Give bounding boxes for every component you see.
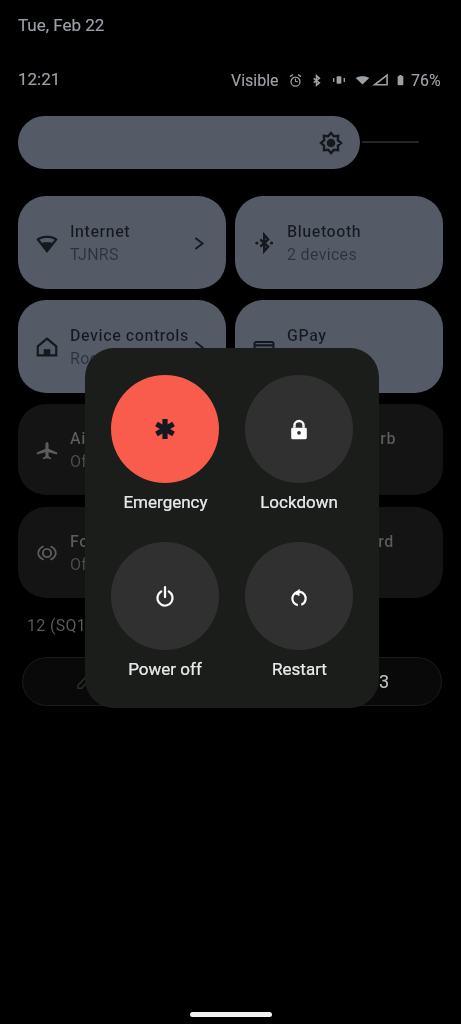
button[interactable]: Airplane mode <box>18 404 226 495</box>
staticText: Tue, Feb 22 <box>18 15 105 35</box>
button[interactable]: GPay <box>235 300 443 393</box>
button[interactable]: Brightness <box>18 116 360 169</box>
staticText: Emergency <box>123 492 208 512</box>
button[interactable]: Internet <box>18 196 226 289</box>
staticText: Room <box>70 349 114 368</box>
staticText: Lockdown <box>260 492 338 512</box>
staticText: TJNRS <box>70 245 119 264</box>
button[interactable]: Restart <box>242 542 356 679</box>
staticText: Bluetooth <box>287 222 362 241</box>
staticText: Device controls <box>70 326 189 345</box>
staticText: Do not disturb <box>287 429 396 448</box>
staticText: Focus mode <box>70 532 164 551</box>
staticText: Screen record <box>287 532 394 551</box>
button[interactable]: Device controls <box>18 300 226 393</box>
staticText: Off <box>70 555 94 574</box>
button[interactable]: Lockdown <box>242 375 356 512</box>
button[interactable]: Emergency <box>108 375 222 512</box>
button[interactable]: Focus mode <box>18 507 226 598</box>
button[interactable]: 3 <box>22 657 442 706</box>
staticText: Internet <box>70 222 131 241</box>
staticText: 2 devices <box>287 245 358 264</box>
staticText: 3 <box>379 671 390 692</box>
button[interactable]: Bluetooth <box>235 196 443 289</box>
staticText: 12 (SQ1D.220205.004) <box>27 616 195 635</box>
staticText: Power off <box>128 659 202 679</box>
staticText: Off <box>70 452 94 471</box>
button[interactable]: Power off <box>108 542 222 679</box>
staticText: 12:21 <box>18 69 61 89</box>
staticText: Visible <box>231 71 279 90</box>
button[interactable]: Screen record <box>235 507 443 598</box>
staticText: GPay <box>287 326 327 345</box>
staticText: Restart <box>272 659 327 679</box>
button[interactable]: Do not disturb <box>235 404 443 495</box>
staticText: Airplane mode <box>70 429 182 448</box>
staticText: 76% <box>411 71 441 90</box>
